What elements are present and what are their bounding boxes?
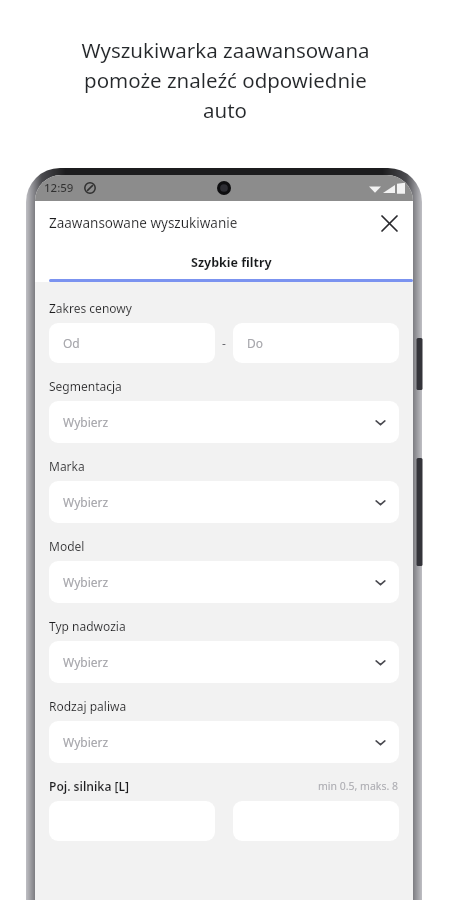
staticText: Zakres cenowy xyxy=(49,300,132,316)
staticText: Wyszukiwarka zaawansowana xyxy=(81,36,370,64)
button[interactable]: Zamknij xyxy=(373,207,405,239)
button[interactable]: Wybierz xyxy=(49,561,399,603)
staticText: Typ nadwozia xyxy=(49,618,126,634)
staticText: Wybierz xyxy=(63,574,109,590)
staticText: Wybierz xyxy=(63,414,109,430)
staticText: 12:59 xyxy=(44,180,74,196)
button[interactable]: Wybierz xyxy=(49,641,399,683)
staticText: Wybierz xyxy=(63,734,109,750)
staticText: Poj. silnika [L] xyxy=(49,778,130,794)
staticText: Rodzaj paliwa xyxy=(49,698,127,714)
staticText: Segmentacja xyxy=(49,378,122,394)
button[interactable]: Wybierz xyxy=(49,721,399,763)
button[interactable]: Szybkie filtry xyxy=(49,244,413,282)
staticText: Do xyxy=(247,335,264,351)
staticText: Wybierz xyxy=(63,654,109,670)
staticText: min 0.5, maks. 8 xyxy=(318,779,399,793)
button[interactable]: Do xyxy=(233,323,399,363)
staticText: Od xyxy=(63,335,80,351)
staticText: pomoże znaleźć odpowiednie xyxy=(84,66,367,94)
staticText: Wybierz xyxy=(63,494,109,510)
button[interactable]: Od xyxy=(49,323,215,363)
staticText: auto xyxy=(203,96,247,124)
staticText: Szybkie filtry xyxy=(191,254,272,271)
staticText: Zaawansowane wyszukiwanie xyxy=(49,214,238,232)
staticText: - xyxy=(222,335,226,351)
button[interactable]: Wybierz xyxy=(49,481,399,523)
staticText: Model xyxy=(49,538,85,554)
staticText: Marka xyxy=(49,458,85,474)
button[interactable]: Wybierz xyxy=(49,401,399,443)
